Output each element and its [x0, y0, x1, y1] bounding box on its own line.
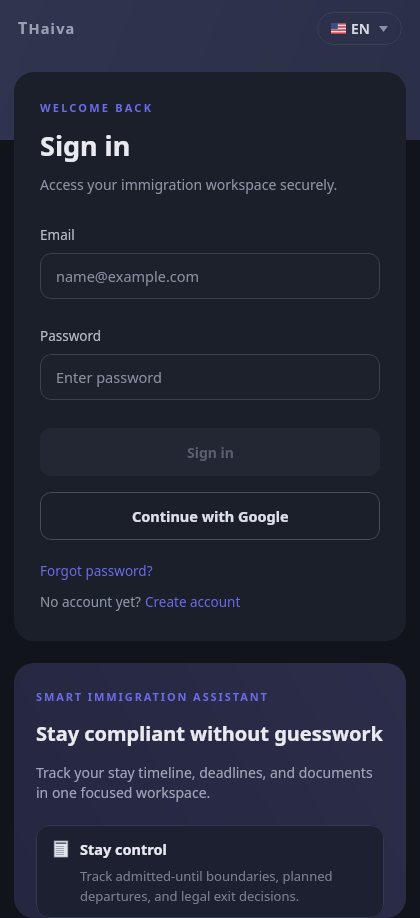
button[interactable]: Create account [145, 593, 241, 611]
staticText: EN [351, 19, 370, 38]
button[interactable]: name@example.com [40, 253, 380, 299]
staticText: Stay control [80, 839, 167, 859]
button[interactable]: Forgot password? [40, 562, 153, 580]
staticText: Track your stay timeline, deadlines, and… [36, 763, 384, 803]
button[interactable]: THaiva [18, 17, 76, 39]
button[interactable]: Enter password [40, 354, 380, 400]
other: Document [52, 840, 70, 858]
staticText: name@example.com [56, 266, 200, 286]
staticText: Continue with Google [132, 506, 289, 526]
staticText: No account yet? [40, 593, 145, 611]
button[interactable]: EN [317, 12, 402, 45]
staticText: Stay compliant without guesswork [36, 720, 383, 747]
staticText: Enter password [56, 367, 162, 387]
button[interactable]: Sign in [40, 428, 380, 476]
staticText: Track admitted-until boundaries, planned… [80, 867, 368, 904]
staticText: Sign in [187, 443, 234, 462]
staticText: Access your immigration workspace secure… [40, 175, 338, 194]
staticText: Sign in [40, 127, 131, 164]
staticText: SMART IMMIGRATION ASSISTANT [36, 689, 269, 704]
staticText: WELCOME BACK [40, 100, 154, 115]
staticText: Email [40, 226, 75, 244]
button[interactable]: Continue with Google [40, 492, 380, 540]
staticText: THaiva [18, 17, 76, 39]
button[interactable]: Document [36, 825, 384, 918]
staticText: Password [40, 327, 102, 345]
